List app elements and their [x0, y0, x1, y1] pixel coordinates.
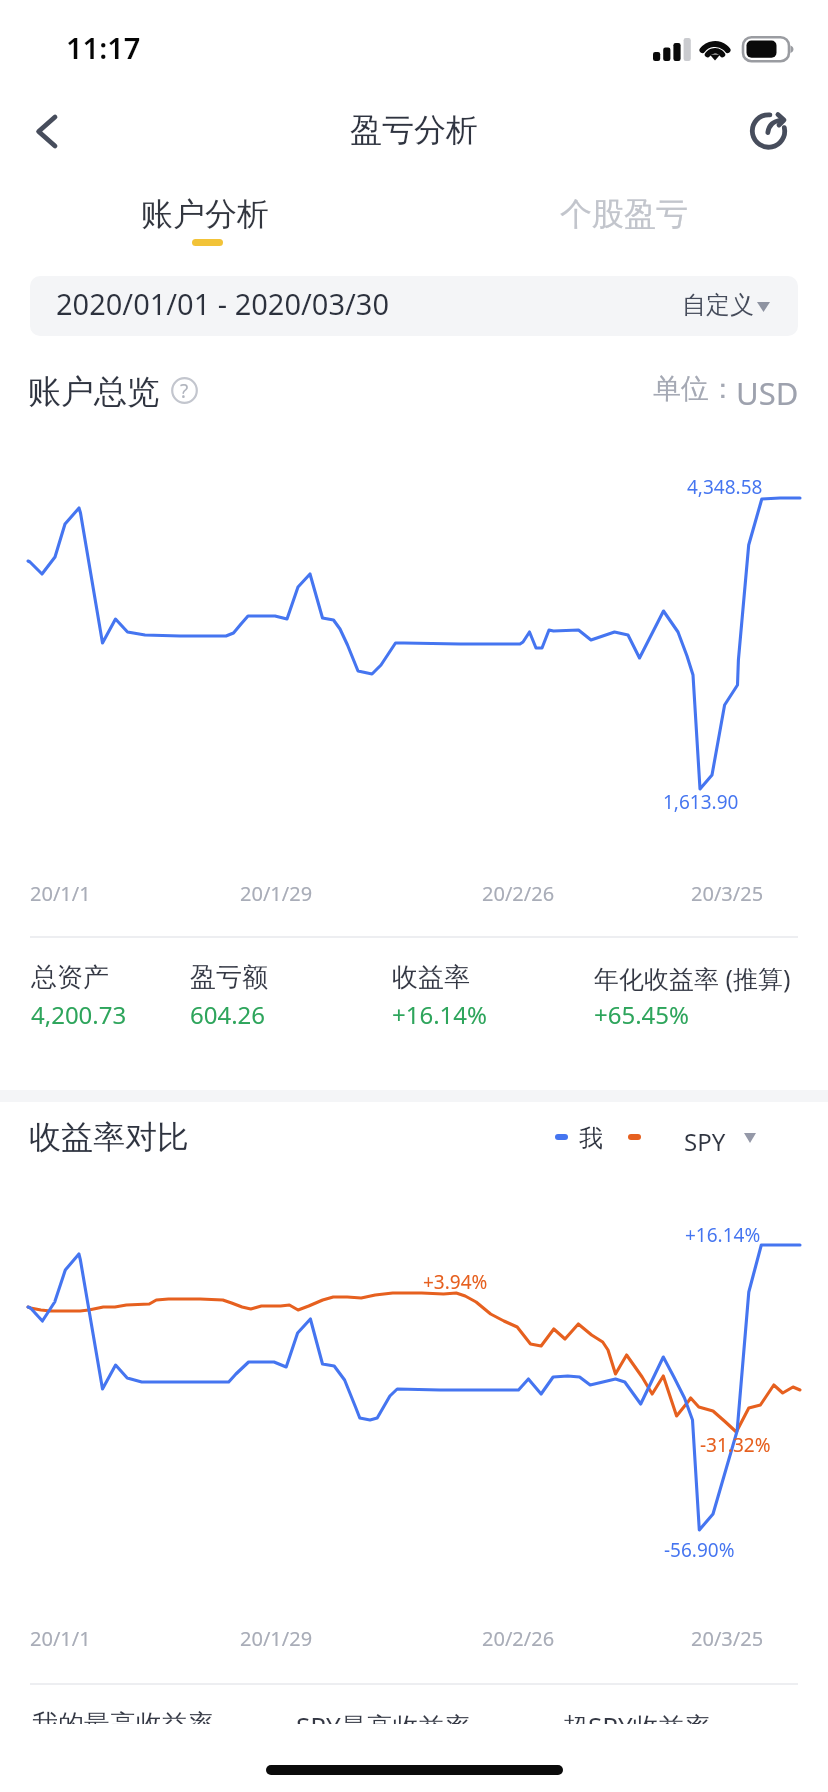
staticText: 20/3/25 — [691, 1625, 764, 1652]
staticText: 20/1/29 — [240, 880, 313, 907]
staticText: 年化收益率 (推算) — [594, 961, 791, 995]
staticText: 盈亏额 — [190, 961, 268, 994]
staticText: 单位： — [653, 371, 737, 406]
staticText: +16.14% — [685, 1222, 761, 1248]
staticText: USD — [736, 372, 799, 414]
staticText: 自定义 — [682, 290, 754, 320]
staticText: -56.90% — [664, 1537, 735, 1563]
staticText: 收益率对比 — [29, 1117, 189, 1157]
button[interactable]: Share — [724, 88, 818, 176]
staticText: 1,613.90 — [663, 789, 739, 815]
staticText: 20/2/26 — [482, 880, 555, 907]
staticText: ? — [180, 378, 189, 404]
staticText: 4,348.58 — [687, 474, 763, 500]
staticText: +65.45% — [594, 998, 690, 1031]
staticText: +3.94% — [423, 1269, 488, 1295]
staticText: 20/2/26 — [482, 1625, 555, 1652]
staticText: +16.14% — [392, 998, 488, 1031]
button[interactable]: Help — [171, 377, 198, 404]
button[interactable]: SPY — [676, 1112, 768, 1168]
staticText: 账户分析 — [141, 194, 269, 234]
staticText: 2020/01/01 - 2020/03/30 — [56, 284, 389, 323]
staticText: 总资产 — [31, 961, 109, 994]
staticText: -31.32% — [700, 1432, 771, 1458]
staticText: 超SPY收益率 — [562, 1708, 711, 1744]
staticText: 盈亏分析 — [350, 110, 478, 150]
staticText: 11:17 — [66, 28, 141, 67]
staticText: 20/1/29 — [240, 1625, 313, 1652]
staticText: 20/1/1 — [30, 880, 91, 907]
staticText: 20/3/25 — [691, 880, 764, 907]
staticText: 账户总览 — [28, 371, 160, 413]
staticText: SPY最高收益率 — [296, 1708, 471, 1744]
button[interactable]: 2020/01/01 - 2020/03/30 — [30, 276, 798, 336]
staticText: 个股盈亏 — [560, 194, 688, 234]
button[interactable]: Back — [0, 88, 94, 176]
staticText: 我的最高收益率 — [32, 1708, 214, 1741]
staticText: 我 — [579, 1123, 603, 1153]
staticText: 收益率 — [392, 961, 470, 994]
staticText: SPY — [684, 1125, 726, 1158]
staticText: 20/1/1 — [30, 1625, 91, 1652]
staticText: 604.26 — [190, 998, 266, 1031]
button[interactable]: 个股盈亏 — [478, 182, 768, 260]
button[interactable]: 账户分析 — [60, 182, 350, 260]
staticText: 4,200.73 — [31, 998, 127, 1031]
